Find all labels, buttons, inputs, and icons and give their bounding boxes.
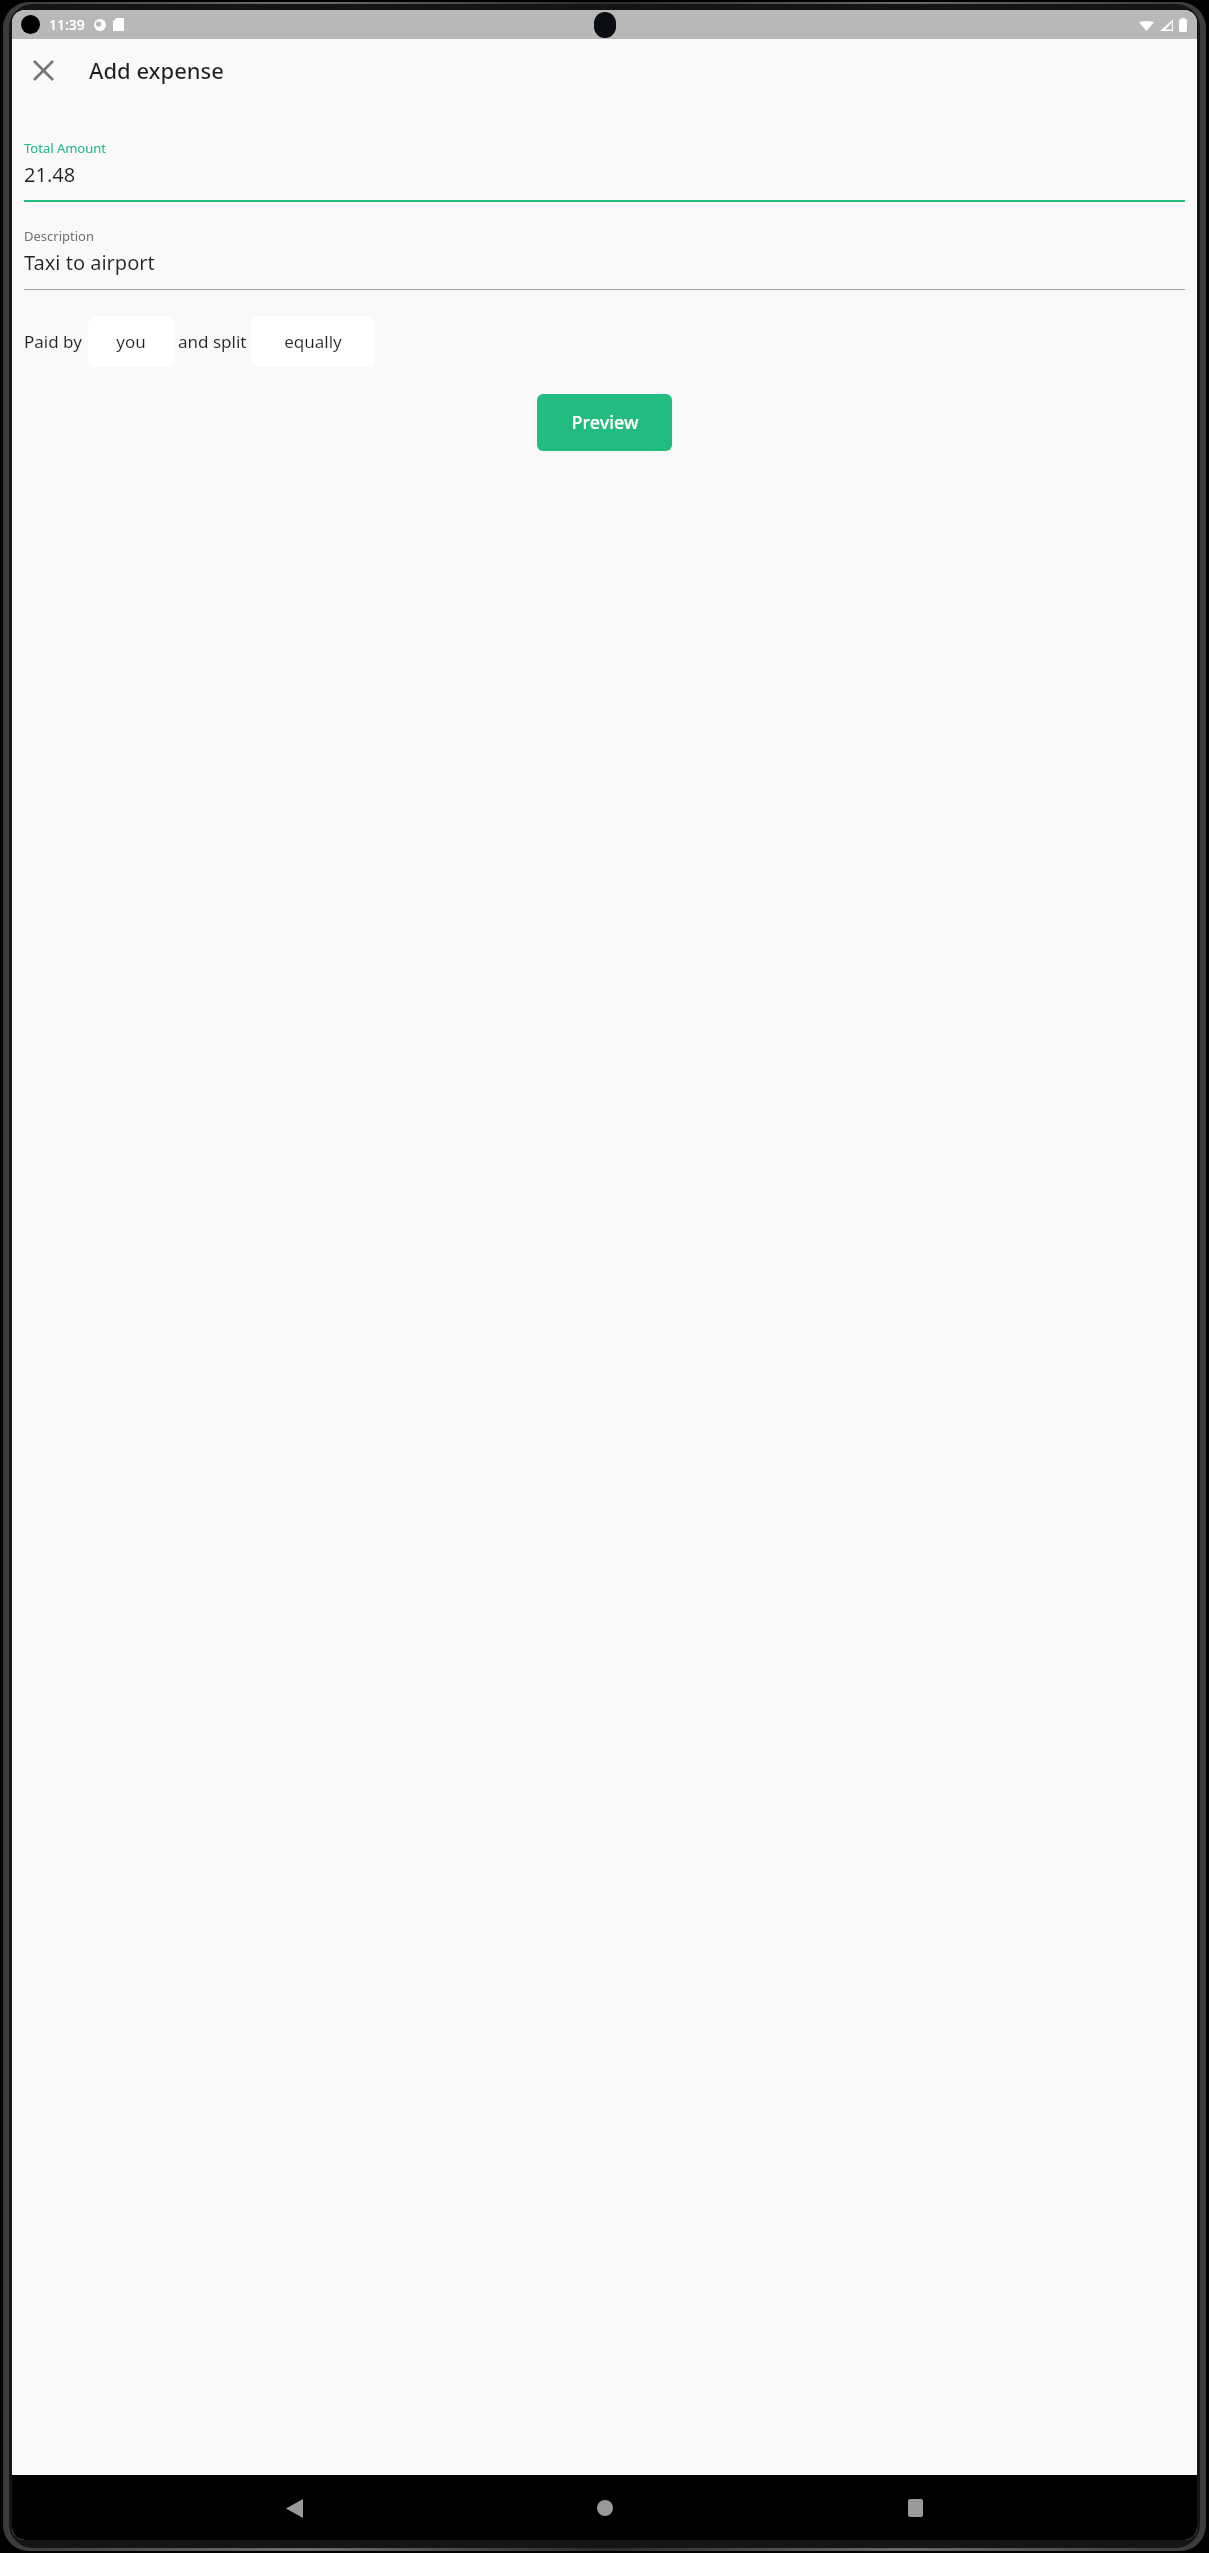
staticText: Total Amount — [24, 139, 106, 157]
button[interactable]: Back — [265, 2479, 323, 2537]
button[interactable]: Recent apps — [886, 2479, 944, 2537]
button[interactable]: equally — [251, 316, 375, 367]
button[interactable]: Close — [19, 46, 67, 94]
staticText: Add expense — [89, 55, 224, 85]
staticText: Preview — [571, 410, 639, 435]
staticText: Taxi to airport — [24, 249, 155, 276]
staticText: Paid by — [24, 330, 82, 353]
staticText: equally — [284, 330, 342, 353]
staticText: you — [116, 330, 146, 353]
button[interactable]: Description — [24, 227, 1185, 290]
staticText: Description — [24, 227, 94, 245]
staticText: 11:39 — [49, 15, 85, 34]
button[interactable]: Preview — [537, 394, 672, 451]
button[interactable]: Total Amount — [24, 139, 1185, 202]
button[interactable]: you — [88, 316, 174, 367]
button[interactable]: Home — [576, 2479, 634, 2537]
staticText: 21.48 — [24, 161, 76, 188]
staticText: and split — [178, 330, 247, 353]
